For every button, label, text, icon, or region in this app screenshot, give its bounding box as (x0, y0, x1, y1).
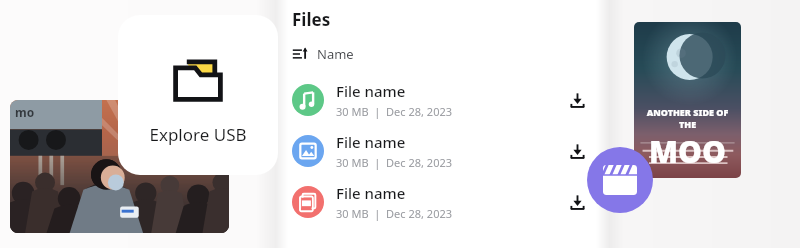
staticText: File name (336, 81, 406, 101)
button[interactable]: Photo (10, 100, 229, 233)
button[interactable]: Download (562, 187, 592, 217)
staticText: 30 MB | Dec 28, 2023 (336, 206, 453, 221)
staticText: Files (292, 8, 331, 31)
button[interactable]: Download (562, 136, 592, 166)
button[interactable]: File name (292, 81, 592, 119)
staticText: File name (336, 132, 406, 152)
staticText: 30 MB | Dec 28, 2023 (336, 155, 453, 170)
button[interactable]: Explore USB (118, 15, 278, 175)
button[interactable]: File name (292, 132, 592, 170)
button[interactable]: Download (562, 85, 592, 115)
staticText: Name (317, 45, 354, 63)
button[interactable]: Video clips (587, 147, 653, 213)
staticText: File name (336, 183, 406, 203)
staticText: MOON (640, 131, 735, 178)
button[interactable]: Name (292, 45, 354, 63)
staticText: ANOTHER SIDE OF THE (640, 106, 735, 130)
button[interactable]: File name (292, 183, 592, 221)
button[interactable]: Book cover: Another Side of the Moon (634, 22, 741, 178)
staticText: 30 MB | Dec 28, 2023 (336, 104, 453, 119)
staticText: Explore USB (149, 123, 247, 146)
staticText: mo (15, 104, 35, 120)
